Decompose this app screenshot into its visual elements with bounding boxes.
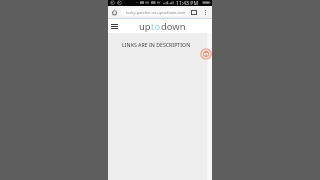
staticText: LINKS ARE IN DESCRIPTION — [122, 41, 191, 48]
staticText: lucky-patcher-es.uptodown.com — [126, 10, 186, 15]
button[interactable]: Floating chat bubble — [200, 48, 212, 60]
button[interactable]: Home — [110, 8, 119, 17]
staticText: to — [151, 20, 161, 33]
staticText: 11:43 PM — [176, 0, 199, 6]
button[interactable]: Menu — [109, 21, 119, 31]
staticText: up — [139, 20, 151, 33]
button[interactable]: More options — [201, 8, 210, 17]
button[interactable]: Tabs — [189, 8, 198, 17]
staticText: down — [161, 20, 186, 33]
button[interactable]: lucky-patcher-es.uptodown.com — [121, 8, 189, 16]
